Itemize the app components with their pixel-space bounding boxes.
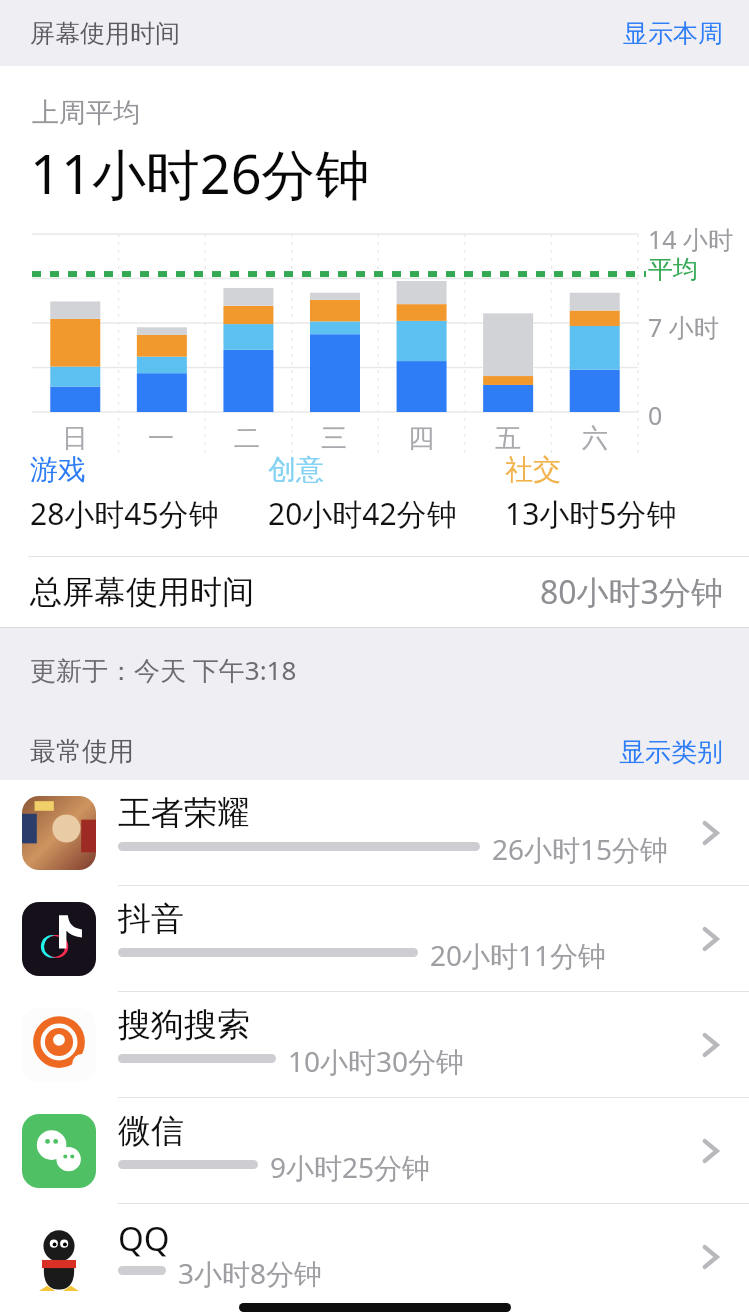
staticText: 屏幕使用时间 [30,18,180,49]
staticText: 上周平均 [32,96,140,130]
staticText: 26小时15分钟 [492,830,669,868]
staticText: 二 [234,422,260,455]
staticText: 三 [321,422,347,455]
staticText: 0 [648,398,663,432]
other: 查看 搜狗搜索 详情 [697,1032,723,1058]
other: 查看 QQ 详情 [697,1244,723,1270]
staticText: 平均 [648,254,698,285]
button[interactable]: 微信 [0,1098,749,1203]
staticText: 六 [582,422,608,455]
staticText: 3小时8分钟 [178,1254,323,1292]
staticText: 显示类别 [619,736,723,766]
staticText: 7 小时 [648,310,719,344]
staticText: 11小时26分钟 [30,136,370,210]
staticText: 总屏幕使用时间 [30,572,254,612]
staticText: 14 小时 [648,222,734,256]
button[interactable]: 显示类别 [593,728,749,774]
other: 查看 微信 详情 [697,1138,723,1164]
staticText: QQ [118,1216,170,1261]
staticText: 微信 [118,1110,184,1152]
staticText: 四 [408,422,434,455]
staticText: 日 [62,422,88,455]
staticText: 20小时42分钟 [268,493,457,534]
staticText: 最常使用 [30,735,134,768]
staticText: 显示本周 [623,18,723,49]
staticText: 13小时5分钟 [505,493,677,534]
staticText: 创意 [268,452,324,487]
button[interactable]: 抖音 [0,886,749,991]
button[interactable]: 社交 [505,452,735,534]
staticText: 28小时45分钟 [30,493,219,534]
button[interactable]: 总屏幕使用时间 [0,557,749,627]
staticText: 社交 [505,452,561,487]
button[interactable]: 显示本周 [597,6,749,61]
button[interactable]: 王者荣耀 [0,780,749,885]
other: 查看 王者荣耀 详情 [697,820,723,846]
button[interactable]: 创意 [268,452,505,534]
staticText: 五 [495,422,521,455]
staticText: 9小时25分钟 [270,1148,431,1186]
button[interactable]: QQ [0,1204,749,1309]
staticText: 搜狗搜索 [118,1004,250,1046]
staticText: 王者荣耀 [118,792,250,834]
button[interactable]: 搜狗搜索 [0,992,749,1097]
button[interactable]: 游戏 [30,452,268,534]
staticText: 10小时30分钟 [288,1042,465,1080]
staticText: 抖音 [118,898,184,940]
staticText: 更新于：今天 下午3:18 [30,652,297,688]
staticText: 20小时11分钟 [430,936,607,974]
other: 查看 抖音 详情 [697,926,723,952]
staticText: 游戏 [30,452,86,487]
staticText: 80小时3分钟 [540,570,723,614]
staticText: 一 [148,422,174,455]
